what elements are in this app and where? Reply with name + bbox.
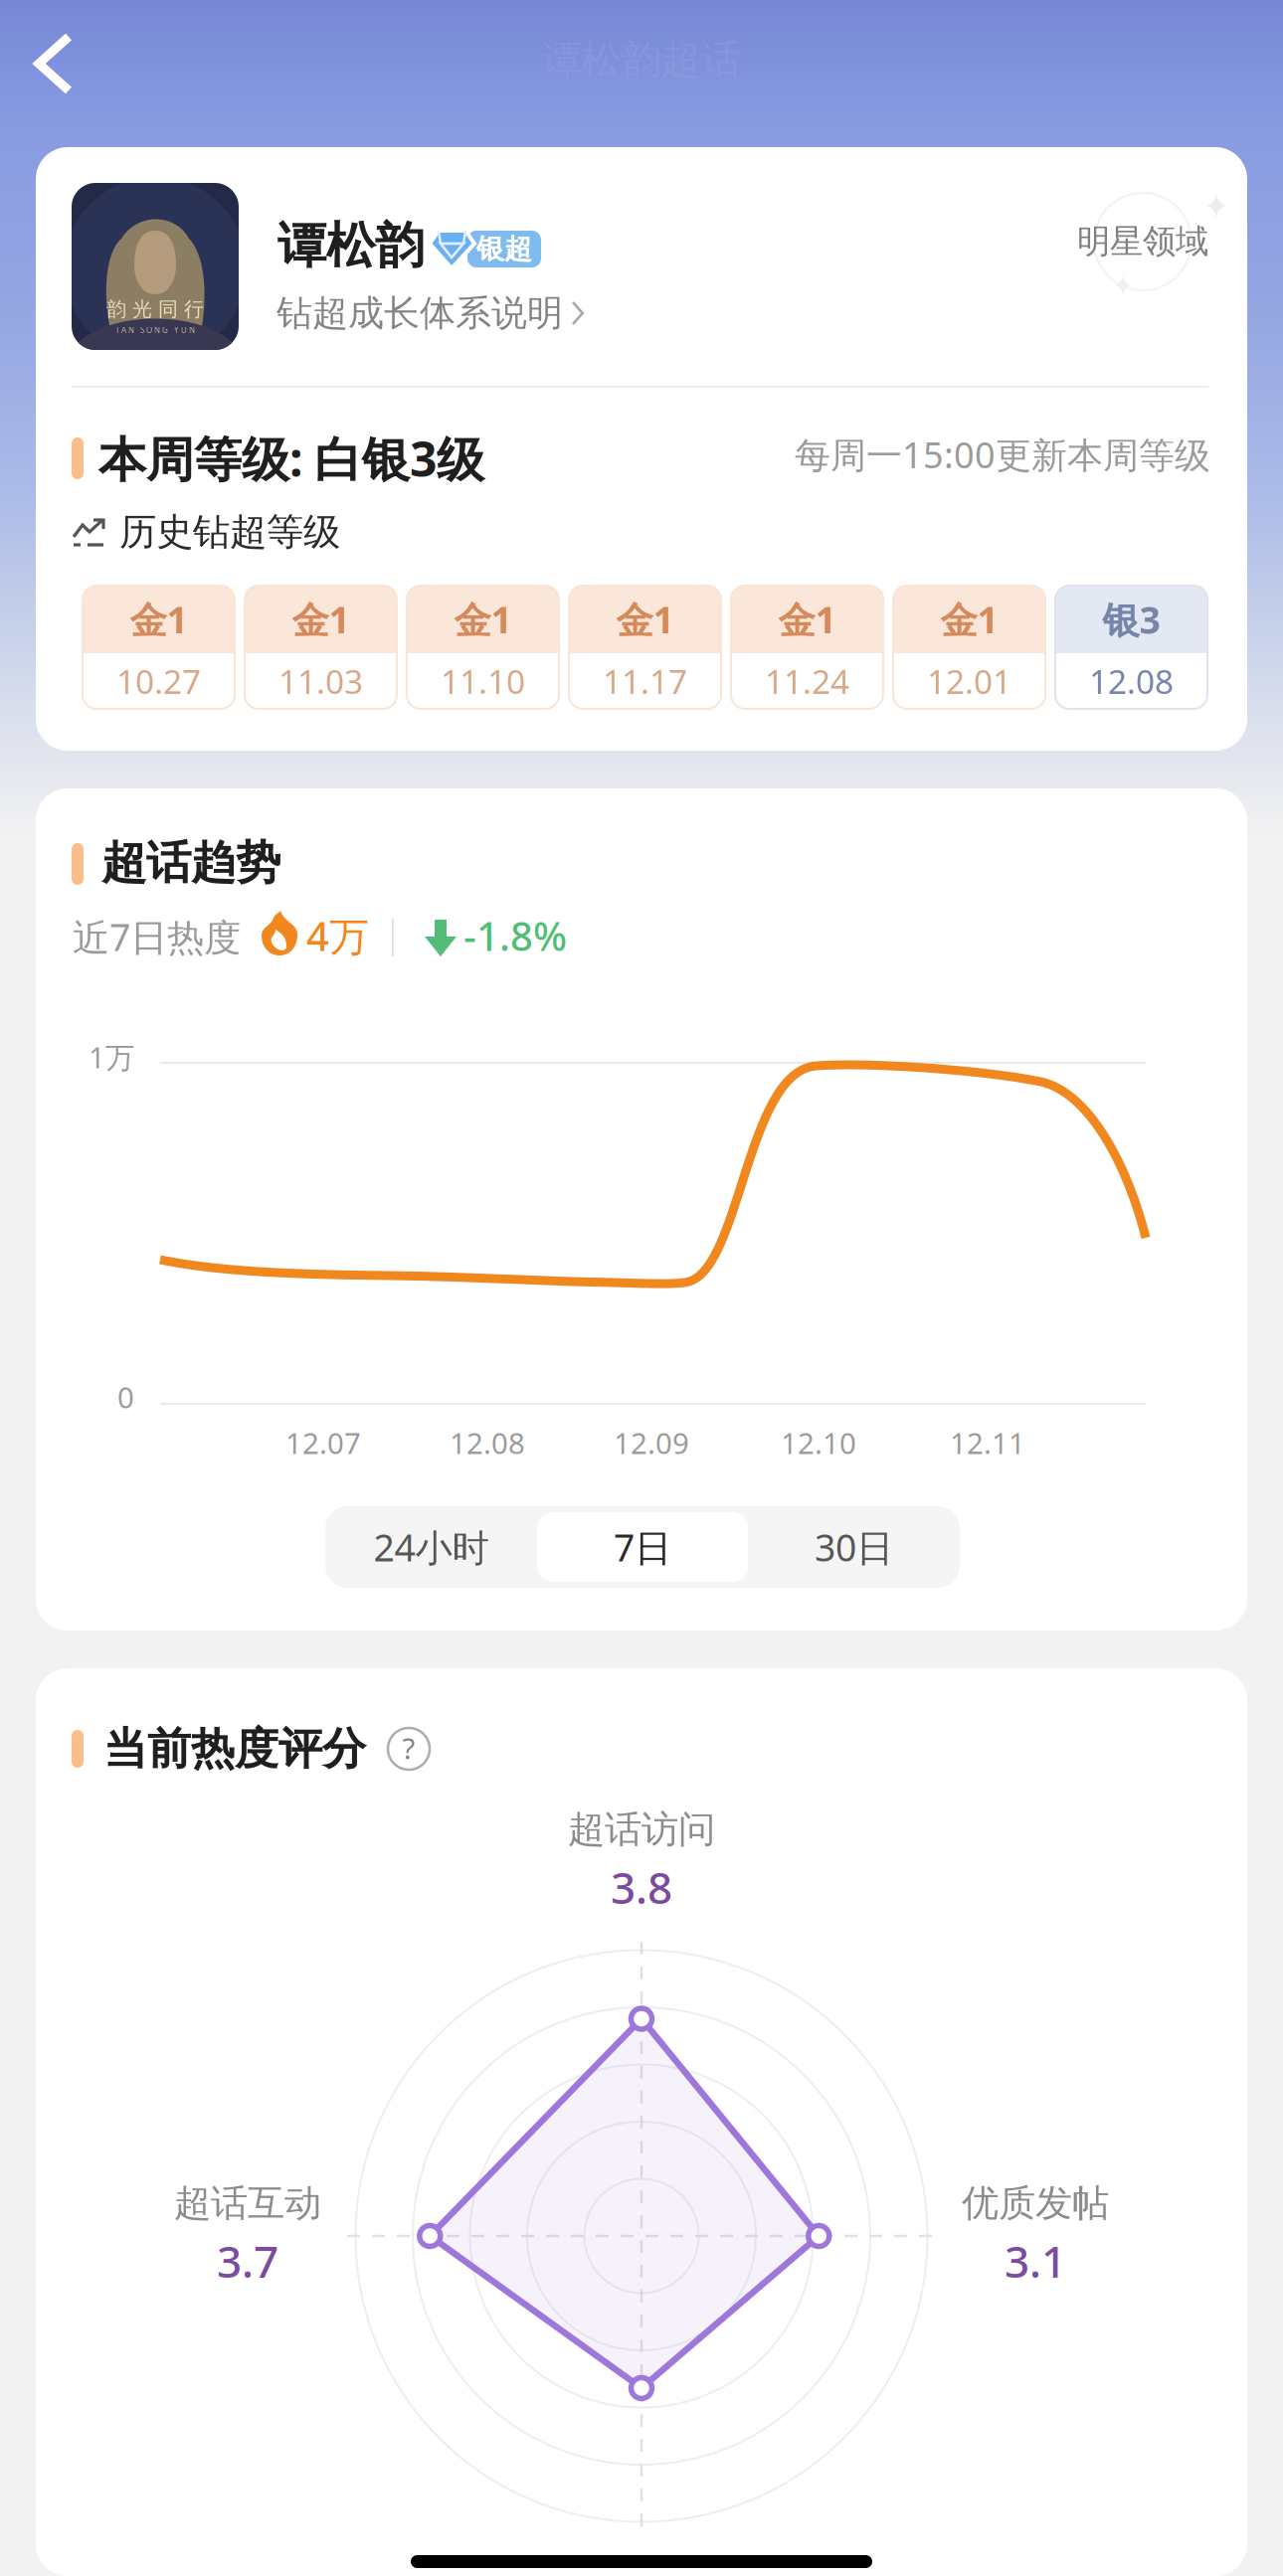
- staticText: 12.08: [450, 1423, 525, 1462]
- button[interactable]: 24小时: [325, 1506, 537, 1588]
- staticText: 金1: [778, 595, 836, 644]
- staticText: 12.09: [614, 1423, 689, 1462]
- staticText: 银3: [1102, 595, 1160, 644]
- staticText: 明星领域: [1077, 221, 1208, 262]
- button[interactable]: 评分说明: [386, 1726, 432, 1772]
- staticText: 12.07: [285, 1423, 361, 1462]
- staticText: 每周一15:00更新本周等级: [795, 431, 1210, 478]
- staticText: 3.7: [217, 2232, 278, 2290]
- staticText: 银超: [476, 232, 532, 266]
- button[interactable]: 返回: [0, 10, 100, 109]
- staticText: 本周等级: 白银3级: [98, 427, 484, 490]
- staticText: 金1: [130, 595, 187, 644]
- staticText: 3.1: [1005, 2232, 1066, 2290]
- staticText: 优质发帖: [962, 2180, 1109, 2226]
- staticText: 0: [117, 1377, 134, 1416]
- staticText: 3.8: [611, 1858, 672, 1916]
- staticText: 24小时: [373, 1522, 489, 1572]
- staticText: 当前热度评分: [103, 1722, 366, 1776]
- staticText: 历史钻超等级: [119, 509, 340, 555]
- staticText: 金1: [616, 595, 674, 644]
- staticText: 韵 光 同 行: [106, 297, 204, 322]
- staticText: 谭松韵超话: [542, 35, 741, 84]
- staticText: 10.27: [116, 659, 201, 703]
- staticText: -1.8%: [463, 909, 567, 962]
- staticText: 30日: [815, 1522, 893, 1572]
- staticText: 12.08: [1089, 659, 1174, 703]
- staticText: ?: [402, 1728, 415, 1767]
- staticText: 钻超成长体系说明: [276, 291, 563, 335]
- button[interactable]: 30日: [748, 1506, 960, 1588]
- button[interactable]: 钻超成长体系说明: [276, 287, 586, 339]
- staticText: 谭松韵: [277, 215, 424, 276]
- staticText: 金1: [454, 595, 512, 644]
- staticText: 11.24: [765, 659, 849, 703]
- staticText: 12.10: [781, 1423, 856, 1462]
- staticText: 超话访问: [568, 1807, 715, 1852]
- staticText: 超话互动: [174, 2180, 321, 2226]
- staticText: T A N S O N G Y U N: [115, 325, 195, 335]
- button[interactable]: 7日: [537, 1512, 748, 1582]
- staticText: 金1: [940, 595, 998, 644]
- staticText: 金1: [292, 595, 350, 644]
- staticText: 12.01: [927, 659, 1011, 703]
- staticText: 11.17: [603, 659, 687, 703]
- staticText: 12.11: [950, 1423, 1025, 1462]
- staticText: 7日: [614, 1522, 671, 1572]
- staticText: 近7日热度: [73, 912, 241, 961]
- staticText: 11.10: [441, 659, 525, 703]
- staticText: 4万: [306, 909, 369, 962]
- staticText: 超话趋势: [101, 835, 280, 891]
- staticText: 1万: [89, 1037, 134, 1076]
- staticText: 11.03: [278, 659, 363, 703]
